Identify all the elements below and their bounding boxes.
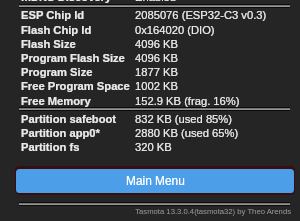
staticText: 0x164020 (DIO) [135,24,215,37]
staticText: Main Menu [126,174,185,187]
staticText: Program Size [21,66,93,79]
staticText: Partition app0* [21,127,100,140]
staticText: 320 KB [135,141,172,154]
staticText: Partition fs [21,141,80,154]
staticText: Free Program Space [21,80,130,93]
staticText: Flash Size [21,38,76,51]
staticText: ESP Chip Id [21,9,85,22]
staticText: 1002 KB [135,80,178,93]
staticText: 1877 KB [135,66,178,79]
staticText: Free Memory [21,95,91,108]
staticText: Tasmota 13.3.0.4(tasmota32) by Theo Aren… [0,207,291,216]
staticText: 2085076 (ESP32-C3 v0.3) [135,9,267,22]
button[interactable]: Main Menu [15,166,295,195]
staticText: mDNS Discovery [21,0,112,4]
staticText: 2880 KB (used 65%) [135,127,239,140]
staticText: 832 KB (used 85%) [135,113,233,126]
staticText: Program Flash Size [21,52,125,65]
staticText: Enabled [135,0,177,4]
staticText: Flash Chip Id [21,24,92,37]
staticText: 4096 KB [135,52,178,65]
staticText: Partition safeboot [21,113,117,126]
staticText: 152.9 KB (frag. 16%) [135,95,240,108]
staticText: 4096 KB [135,38,178,51]
